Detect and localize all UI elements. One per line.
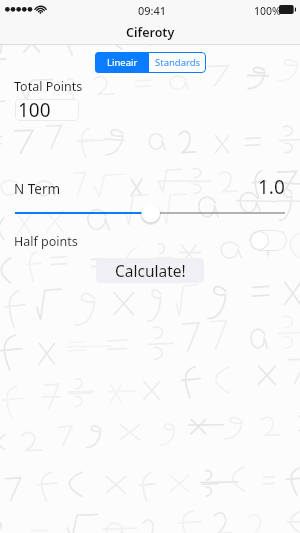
staticText: 100% (254, 4, 281, 18)
button[interactable]: Lineair (95, 52, 149, 73)
button[interactable]: Calculate! (96, 258, 204, 283)
staticText: Calculate! (115, 260, 186, 281)
staticText: 1.0 (258, 174, 285, 200)
staticText: Total Points (14, 78, 83, 95)
staticText: Standards (155, 56, 201, 69)
button[interactable]: 100 (15, 99, 79, 121)
button[interactable]: N term slider (0, 200, 300, 226)
button[interactable]: Half points toggle (249, 230, 287, 251)
staticText: 100 (18, 99, 51, 119)
staticText: Ciferoty (126, 24, 175, 41)
staticText: N Term (14, 180, 61, 198)
staticText: Half points (14, 233, 78, 250)
staticText: 09:41 (138, 3, 167, 18)
staticText: Lineair (107, 56, 138, 69)
button[interactable]: Standards (149, 52, 206, 73)
